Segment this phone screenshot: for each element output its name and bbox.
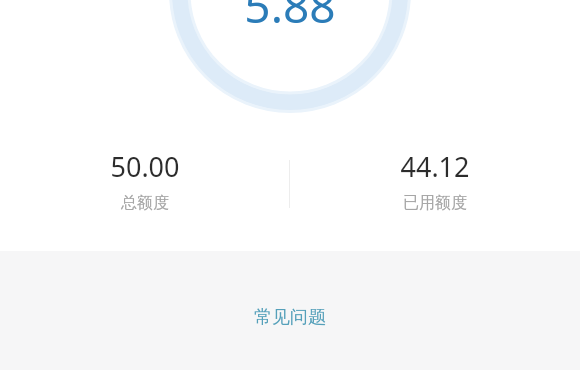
button[interactable]: 常见问题 <box>232 299 348 336</box>
staticText: 总额度 <box>121 193 169 213</box>
button[interactable]: 44.12 <box>290 148 580 213</box>
staticText: 5.88 <box>244 0 336 37</box>
staticText: 常见问题 <box>254 306 326 329</box>
button[interactable]: 50.00 <box>0 148 290 213</box>
staticText: 50.00 <box>110 148 180 185</box>
staticText: 已用额度 <box>403 193 467 213</box>
staticText: 44.12 <box>400 148 470 185</box>
